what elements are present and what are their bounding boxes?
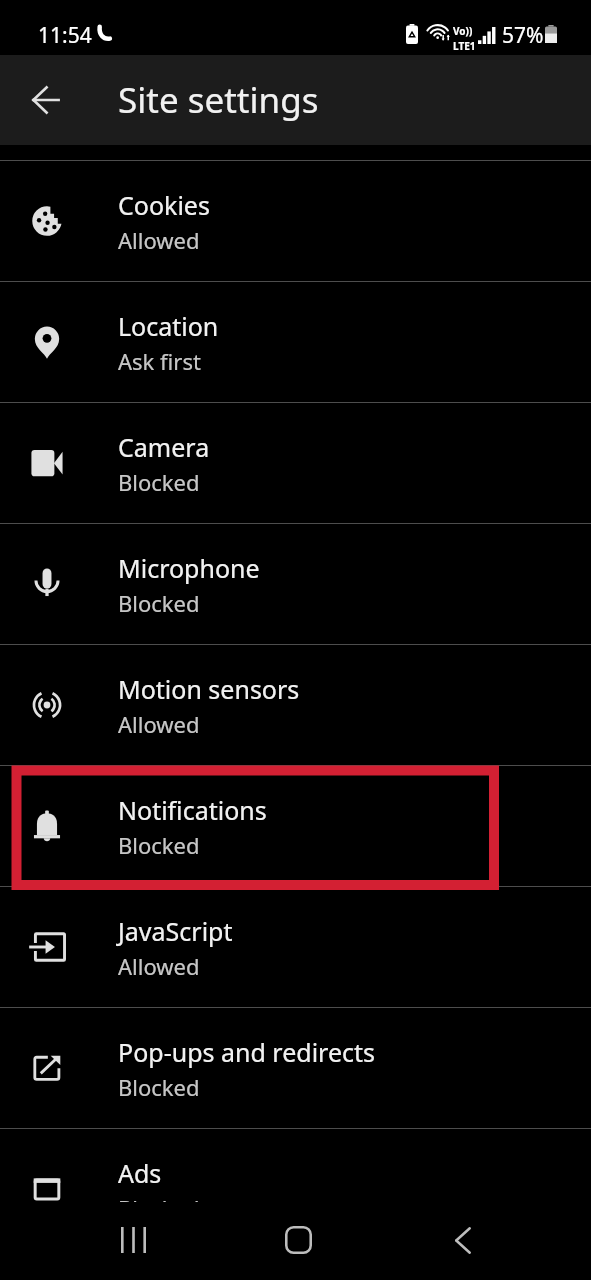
- staticText: Pop-ups and redirects: [118, 1035, 376, 1069]
- staticText: Allowed: [118, 225, 200, 255]
- staticText: Allowed: [118, 951, 200, 981]
- button[interactable]: Home: [263, 1205, 333, 1275]
- staticText: Motion sensors: [118, 672, 300, 706]
- staticText: 11:54: [38, 21, 92, 50]
- staticText: Ads: [118, 1156, 162, 1190]
- staticText: Blocked: [118, 467, 200, 497]
- button[interactable]: Microphone: [0, 524, 591, 644]
- staticText: Location: [118, 309, 219, 343]
- button[interactable]: Cookies: [0, 161, 591, 281]
- staticText: Cookies: [118, 188, 210, 222]
- button[interactable]: Notifications: [0, 766, 591, 886]
- button[interactable]: JavaScript: [0, 887, 591, 1007]
- staticText: Ask first: [118, 346, 201, 376]
- staticText: Blocked: [118, 588, 200, 618]
- staticText: Microphone: [118, 551, 260, 585]
- staticText: JavaScript: [118, 914, 233, 948]
- button[interactable]: Back: [428, 1205, 498, 1275]
- staticText: Vo)): [453, 24, 473, 38]
- staticText: Allowed: [118, 709, 200, 739]
- button[interactable]: Back: [22, 76, 70, 124]
- staticText: 57%: [502, 21, 544, 50]
- staticText: Notifications: [118, 793, 267, 827]
- staticText: Site settings: [118, 76, 319, 124]
- staticText: Blocked: [118, 830, 200, 860]
- button[interactable]: Ads: [0, 1129, 591, 1249]
- button[interactable]: Camera: [0, 403, 591, 523]
- staticText: Camera: [118, 430, 210, 464]
- button[interactable]: Motion sensors: [0, 645, 591, 765]
- button[interactable]: Pop-ups and redirects: [0, 1008, 591, 1128]
- staticText: Blocked - your...: [118, 1193, 280, 1223]
- staticText: Blocked: [118, 1072, 200, 1102]
- button[interactable]: Recent apps: [98, 1205, 168, 1275]
- button[interactable]: Location: [0, 282, 591, 402]
- staticText: LTE1: [453, 39, 476, 53]
